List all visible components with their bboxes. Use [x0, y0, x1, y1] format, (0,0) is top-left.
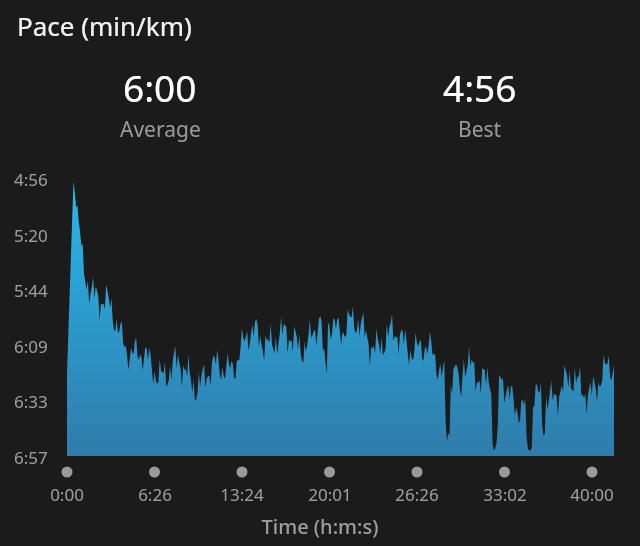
staticText: Average: [120, 115, 201, 144]
staticText: 26:26: [377, 483, 457, 506]
staticText: Best: [458, 115, 502, 144]
staticText: 6:33: [14, 390, 62, 413]
staticText: 0:00: [27, 483, 107, 506]
staticText: 40:00: [552, 483, 632, 506]
button[interactable]: 6:00: [0, 62, 320, 144]
staticText: 5:20: [14, 224, 62, 247]
staticText: 6:09: [14, 335, 62, 358]
button[interactable]: 4:56: [320, 62, 640, 144]
button[interactable]: Pace over time chart: [0, 0, 640, 546]
staticText: 4:56: [14, 168, 62, 191]
staticText: 6:26: [115, 483, 195, 506]
staticText: 6:57: [14, 446, 62, 469]
staticText: 6:00: [123, 62, 197, 112]
staticText: 33:02: [465, 483, 545, 506]
staticText: 20:01: [290, 483, 370, 506]
button[interactable]: Pace (min/km): [17, 8, 192, 43]
staticText: Time (h:m:s): [0, 513, 640, 540]
staticText: 13:24: [202, 483, 282, 506]
staticText: 4:56: [443, 62, 517, 112]
staticText: 5:44: [14, 279, 62, 302]
